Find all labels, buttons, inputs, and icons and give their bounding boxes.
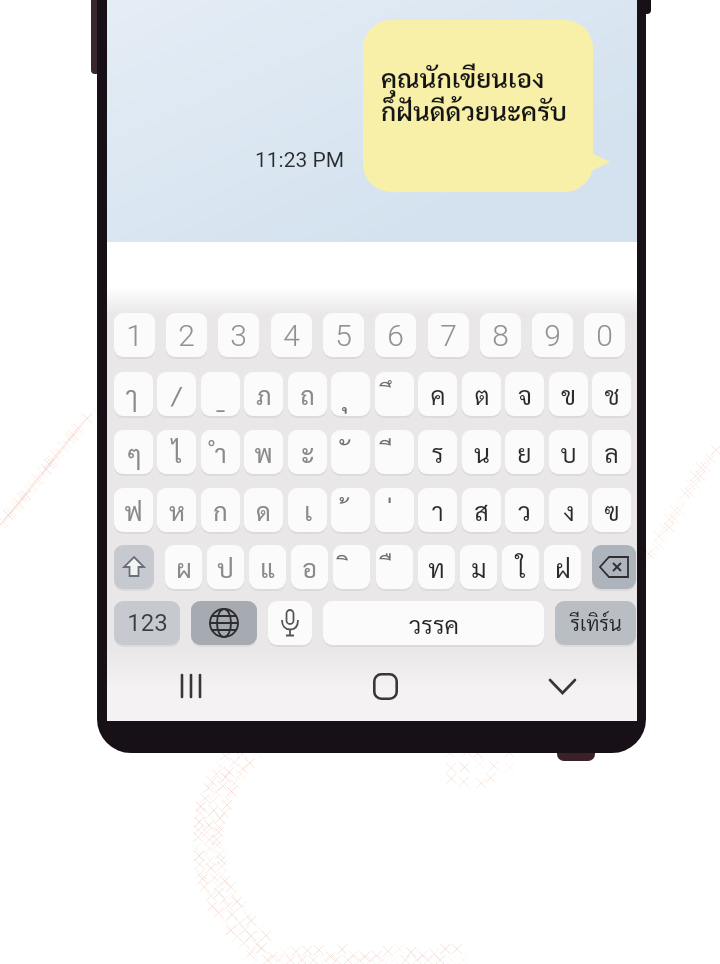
button[interactable]: ๅ bbox=[114, 372, 153, 416]
button[interactable]: จ bbox=[505, 372, 544, 416]
button[interactable]: ห bbox=[157, 488, 196, 532]
button[interactable]: 123 bbox=[114, 601, 180, 645]
button[interactable]: รีเทิร์น bbox=[555, 601, 636, 645]
staticText: ่ bbox=[386, 494, 393, 526]
staticText: ไ bbox=[172, 436, 182, 468]
staticText: ห bbox=[169, 494, 185, 526]
staticText: ุ bbox=[342, 378, 349, 410]
staticText: ล bbox=[604, 436, 619, 468]
button[interactable]: ค bbox=[418, 372, 457, 416]
button[interactable]: ั bbox=[331, 430, 370, 474]
button[interactable]: เ bbox=[288, 488, 327, 532]
button[interactable]: อ bbox=[291, 545, 328, 589]
button[interactable]: 5 bbox=[323, 313, 364, 357]
button[interactable]: ฝ bbox=[544, 545, 581, 589]
button[interactable]: / bbox=[157, 372, 196, 416]
staticText: ๅ bbox=[130, 378, 138, 410]
staticText: ๆ bbox=[126, 436, 142, 468]
button[interactable]: 9 bbox=[532, 313, 573, 357]
staticText: ม bbox=[471, 551, 487, 583]
button[interactable]: ใ bbox=[502, 545, 539, 589]
button[interactable] bbox=[537, 664, 587, 708]
button[interactable] bbox=[191, 601, 257, 645]
button[interactable]: ข bbox=[549, 372, 588, 416]
staticText: ภ bbox=[256, 378, 272, 410]
button[interactable]: ฟ bbox=[114, 488, 153, 532]
button[interactable] bbox=[114, 545, 154, 589]
staticText: ด bbox=[256, 494, 271, 526]
button[interactable]: ่ bbox=[375, 488, 414, 532]
staticText: แ bbox=[260, 551, 275, 583]
button[interactable]: 2 bbox=[166, 313, 207, 357]
button[interactable]: 7 bbox=[428, 313, 469, 357]
staticText: ี bbox=[386, 436, 393, 468]
staticText: ค bbox=[430, 378, 446, 410]
staticText: ช bbox=[604, 378, 620, 410]
button[interactable]: ึ bbox=[375, 372, 414, 416]
button[interactable]: ี bbox=[375, 430, 414, 474]
button[interactable]: 1 bbox=[114, 313, 155, 357]
button[interactable]: 0 bbox=[584, 313, 625, 357]
button[interactable] bbox=[167, 664, 217, 708]
button[interactable]: ำ bbox=[201, 430, 240, 474]
button[interactable] bbox=[360, 664, 410, 708]
staticText: ท bbox=[428, 551, 445, 583]
button[interactable]: ผ bbox=[165, 545, 202, 589]
button[interactable] bbox=[363, 20, 593, 192]
staticText: น bbox=[474, 436, 490, 468]
button[interactable]: ย bbox=[505, 430, 544, 474]
button[interactable]: ๆ bbox=[114, 430, 153, 474]
button[interactable]: ถ bbox=[288, 372, 327, 416]
button[interactable]: แ bbox=[249, 545, 286, 589]
staticText: ้ bbox=[342, 494, 349, 526]
button[interactable]: น bbox=[462, 430, 501, 474]
button[interactable]: ไ bbox=[157, 430, 196, 474]
button[interactable]: วรรค bbox=[323, 601, 544, 645]
button[interactable]: ท bbox=[418, 545, 455, 589]
button[interactable]: 3 bbox=[218, 313, 259, 357]
button[interactable]: ก bbox=[201, 488, 240, 532]
button[interactable]: บ bbox=[549, 430, 588, 474]
button[interactable]: ต bbox=[462, 372, 501, 416]
staticText: ร bbox=[431, 436, 444, 468]
staticText: 3 bbox=[230, 318, 247, 353]
button[interactable]: _ bbox=[201, 372, 240, 416]
staticText: ึ bbox=[386, 378, 393, 410]
button[interactable]: ว bbox=[505, 488, 544, 532]
button[interactable]: ง bbox=[549, 488, 588, 532]
button[interactable]: ้ bbox=[331, 488, 370, 532]
button[interactable]: ป bbox=[207, 545, 244, 589]
staticText: ว bbox=[518, 494, 531, 526]
button[interactable]: 4 bbox=[271, 313, 312, 357]
button[interactable]: 8 bbox=[480, 313, 521, 357]
staticText: พ bbox=[254, 436, 273, 468]
staticText: 9 bbox=[544, 318, 561, 353]
staticText: ย bbox=[517, 436, 532, 468]
button[interactable]: พ bbox=[244, 430, 283, 474]
button[interactable] bbox=[268, 601, 312, 645]
button[interactable]: ื bbox=[376, 545, 413, 589]
button[interactable]: ฃ bbox=[592, 488, 631, 532]
button[interactable]: ุ bbox=[331, 372, 370, 416]
staticText: คุณนักเขียนเอง ก็ฝันดีด้วยนะครับ bbox=[381, 60, 567, 127]
button[interactable]: ช bbox=[592, 372, 631, 416]
staticText: 7 bbox=[440, 318, 457, 353]
button[interactable]: า bbox=[418, 488, 457, 532]
staticText: ะ bbox=[301, 436, 315, 468]
button[interactable]: 6 bbox=[375, 313, 416, 357]
button[interactable]: ภ bbox=[244, 372, 283, 416]
staticText: ฟ bbox=[124, 494, 143, 526]
staticText: ำ bbox=[214, 436, 227, 468]
button[interactable]: ม bbox=[460, 545, 497, 589]
button[interactable]: ะ bbox=[288, 430, 327, 474]
staticText: เ bbox=[304, 494, 312, 526]
staticText: ผ bbox=[176, 551, 192, 583]
button[interactable] bbox=[592, 545, 636, 589]
button[interactable]: ล bbox=[592, 430, 631, 474]
button[interactable]: ิ bbox=[333, 545, 370, 589]
button[interactable]: ด bbox=[244, 488, 283, 532]
button[interactable]: ส bbox=[462, 488, 501, 532]
button[interactable]: ร bbox=[418, 430, 457, 474]
staticText: 123 bbox=[127, 609, 168, 637]
